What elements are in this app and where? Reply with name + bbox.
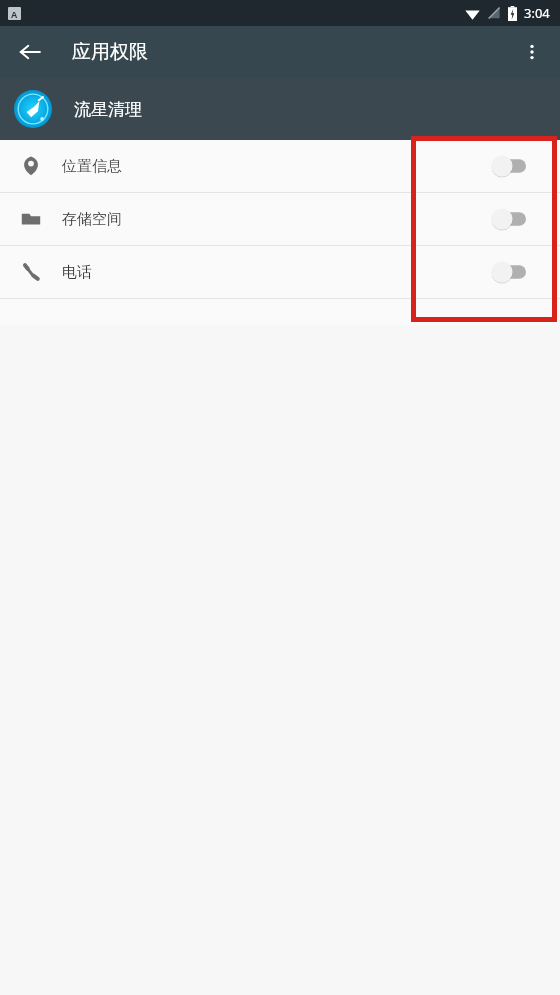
staticText: 应用权限 [72,40,148,64]
staticText: A [11,8,18,20]
button[interactable]: 位置信息 toggle [484,146,536,186]
staticText: 电话 [62,263,484,282]
button[interactable]: 电话 [0,246,560,298]
button[interactable]: 存储空间 [0,193,560,245]
staticText: 3:04 [524,4,550,22]
button[interactable]: More options [510,30,554,74]
staticText: 存储空间 [62,210,484,229]
button[interactable]: Back [8,30,52,74]
button[interactable]: 电话 toggle [484,252,536,292]
button[interactable]: 流星清理 [0,78,560,140]
staticText: 位置信息 [62,157,484,176]
staticText: 流星清理 [74,99,142,120]
button[interactable]: 位置信息 [0,140,560,192]
button[interactable]: 存储空间 toggle [484,199,536,239]
